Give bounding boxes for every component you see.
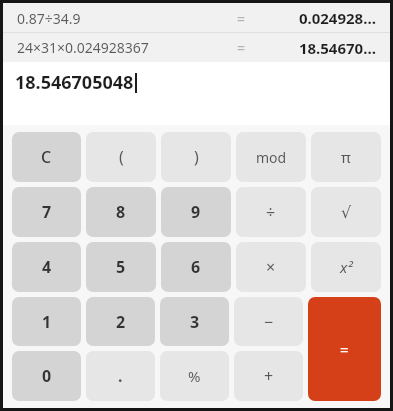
button[interactable]: √ xyxy=(311,187,381,237)
staticText: 5 xyxy=(116,256,126,278)
button[interactable]: 24×31×0.024928367 xyxy=(3,33,390,62)
staticText: = xyxy=(237,9,246,28)
staticText: 0.87÷34.9 xyxy=(17,9,81,28)
button[interactable]: − xyxy=(234,297,303,346)
staticText: 18.546705048 xyxy=(15,70,134,95)
button[interactable]: 0.87÷34.9 xyxy=(3,3,390,33)
staticText: x² xyxy=(340,257,353,277)
staticText: C xyxy=(41,146,52,168)
staticText: 0.024928… xyxy=(298,8,376,28)
button[interactable]: Equals xyxy=(308,297,381,401)
staticText: 3 xyxy=(190,311,200,333)
button[interactable]: 6 xyxy=(161,242,231,292)
button[interactable]: 4 xyxy=(12,242,81,292)
staticText: 1 xyxy=(42,311,52,333)
button[interactable]: . xyxy=(86,351,155,401)
button[interactable]: 9 xyxy=(161,187,231,237)
staticText: 8 xyxy=(116,201,126,223)
staticText: 9 xyxy=(191,201,201,223)
staticText: ( xyxy=(119,146,124,168)
button[interactable]: 7 xyxy=(12,187,81,237)
staticText: = xyxy=(340,339,349,359)
button[interactable]: 8 xyxy=(86,187,156,237)
button[interactable]: mod xyxy=(236,132,306,182)
button[interactable]: ÷ xyxy=(236,187,306,237)
button[interactable]: 3 xyxy=(160,297,229,346)
staticText: 2 xyxy=(116,311,126,333)
staticText: + xyxy=(264,365,274,387)
button[interactable]: % xyxy=(160,351,229,401)
staticText: √ xyxy=(341,203,352,222)
staticText: 4 xyxy=(42,256,52,278)
button[interactable]: + xyxy=(234,351,303,401)
staticText: % xyxy=(188,366,201,386)
staticText: π xyxy=(341,147,351,167)
staticText: mod xyxy=(256,148,287,167)
button[interactable]: × xyxy=(236,242,306,292)
staticText: ÷ xyxy=(266,201,276,223)
staticText: = xyxy=(237,38,246,57)
staticText: . xyxy=(118,365,123,387)
button[interactable]: x² xyxy=(311,242,381,292)
staticText: 24×31×0.024928367 xyxy=(17,38,149,57)
button[interactable]: ) xyxy=(161,132,231,182)
staticText: × xyxy=(266,256,276,278)
staticText: ) xyxy=(194,146,199,168)
staticText: − xyxy=(264,311,274,333)
button[interactable]: 0 xyxy=(12,351,81,401)
staticText: 0 xyxy=(42,365,52,387)
button[interactable]: 18.546705048 xyxy=(3,62,390,125)
button[interactable]: 5 xyxy=(86,242,156,292)
button[interactable]: 2 xyxy=(86,297,155,346)
button[interactable]: C xyxy=(12,132,81,182)
button[interactable]: ( xyxy=(86,132,156,182)
staticText: 6 xyxy=(191,256,201,278)
button[interactable]: π xyxy=(311,132,381,182)
button[interactable]: 1 xyxy=(12,297,81,346)
staticText: 18.54670… xyxy=(298,38,376,58)
staticText: 7 xyxy=(42,201,52,223)
